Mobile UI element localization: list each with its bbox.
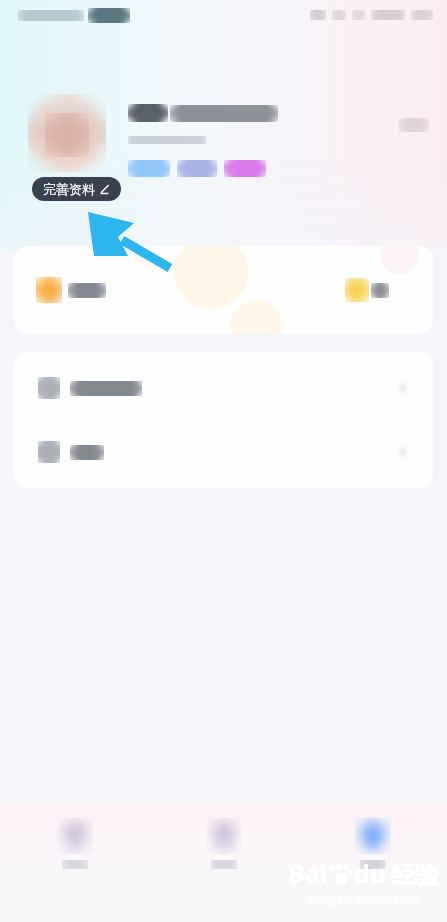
staticText: 完善资料	[43, 181, 95, 197]
button[interactable]: Home	[57, 812, 93, 875]
button[interactable]	[14, 420, 433, 484]
staticText: 经验	[391, 860, 439, 890]
staticText: Bai	[288, 856, 328, 890]
button[interactable]	[14, 356, 433, 420]
button[interactable]: Discover	[206, 812, 242, 875]
button[interactable]: 完善资料	[32, 177, 121, 201]
staticText: du	[354, 856, 387, 890]
button[interactable]: Profile	[355, 812, 391, 875]
button[interactable]	[345, 278, 423, 302]
button[interactable]: Avatar	[24, 90, 110, 176]
button[interactable]	[24, 277, 345, 303]
